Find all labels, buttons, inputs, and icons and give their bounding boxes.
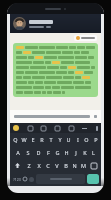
staticText: Z xyxy=(27,162,31,169)
button[interactable]: Z xyxy=(24,159,34,172)
staticText: I xyxy=(77,136,79,143)
button[interactable]: U xyxy=(64,133,73,146)
staticText: G xyxy=(55,149,60,156)
button[interactable]: Y xyxy=(55,133,64,146)
staticText: D xyxy=(36,149,41,156)
button[interactable]: Backspace xyxy=(88,159,100,172)
staticText: A xyxy=(16,149,20,156)
button[interactable]: ?123 xyxy=(12,174,21,184)
button[interactable]: B xyxy=(61,159,70,172)
staticText: V xyxy=(55,162,59,169)
button[interactable]: A xyxy=(13,146,23,159)
staticText: ?123 xyxy=(13,177,21,182)
button[interactable]: Attach xyxy=(10,110,101,123)
button[interactable]: P xyxy=(91,133,100,146)
staticText: E xyxy=(31,136,35,143)
button[interactable]: G xyxy=(53,146,62,159)
button[interactable]: J xyxy=(71,146,80,159)
button[interactable] xyxy=(13,43,98,97)
button[interactable]: Shift xyxy=(11,159,24,172)
button[interactable]: GIF xyxy=(41,126,46,131)
button[interactable]: K xyxy=(80,146,89,159)
staticText: T xyxy=(49,136,53,143)
staticText: S xyxy=(26,149,30,156)
button[interactable]: Settings xyxy=(69,126,74,131)
button[interactable]: X xyxy=(34,159,43,172)
staticText: B xyxy=(64,162,68,169)
button[interactable]: Contact photo xyxy=(13,17,26,30)
button[interactable]: Q xyxy=(11,133,19,146)
staticText: K xyxy=(83,149,87,156)
staticText: C xyxy=(46,162,50,169)
other: Attach xyxy=(94,115,97,118)
button[interactable]: Send xyxy=(87,174,99,184)
button[interactable]: L xyxy=(89,146,98,159)
button[interactable]: I xyxy=(73,133,82,146)
button[interactable] xyxy=(74,35,97,41)
button[interactable]: Voice input xyxy=(96,126,98,131)
staticText: X xyxy=(37,162,41,169)
button[interactable]: Contact photo xyxy=(10,14,101,33)
button[interactable]: Clipboard xyxy=(28,126,33,131)
staticText: H xyxy=(64,149,69,156)
staticText: Y xyxy=(58,136,62,143)
button[interactable]: Sticker xyxy=(55,126,60,131)
button[interactable]: M xyxy=(79,159,88,172)
staticText: N xyxy=(72,162,77,169)
button[interactable]: N xyxy=(70,159,79,172)
button[interactable]: T xyxy=(46,133,55,146)
button[interactable]: E xyxy=(28,133,37,146)
button[interactable]: C xyxy=(43,159,52,172)
staticText: W xyxy=(21,136,27,143)
staticText: F xyxy=(47,149,50,156)
staticText: J xyxy=(75,149,77,156)
staticText: L xyxy=(92,149,95,156)
button[interactable]: S xyxy=(23,146,33,159)
button[interactable]: Assistant xyxy=(13,125,19,131)
button[interactable]: Emoji xyxy=(23,177,27,181)
button[interactable]: F xyxy=(43,146,53,159)
staticText: O xyxy=(84,136,89,143)
button[interactable]: V xyxy=(52,159,61,172)
staticText: U xyxy=(66,136,71,143)
button[interactable]: W xyxy=(19,133,28,146)
staticText: R xyxy=(40,136,44,143)
button[interactable]: Space xyxy=(36,174,85,184)
button[interactable]: D xyxy=(33,146,43,159)
button[interactable]: H xyxy=(62,146,71,159)
button[interactable]: Language xyxy=(29,177,34,182)
staticText: M xyxy=(81,162,86,169)
button[interactable]: O xyxy=(82,133,91,146)
button[interactable]: R xyxy=(37,133,46,146)
staticText: Q xyxy=(13,136,18,143)
staticText: P xyxy=(94,136,98,143)
